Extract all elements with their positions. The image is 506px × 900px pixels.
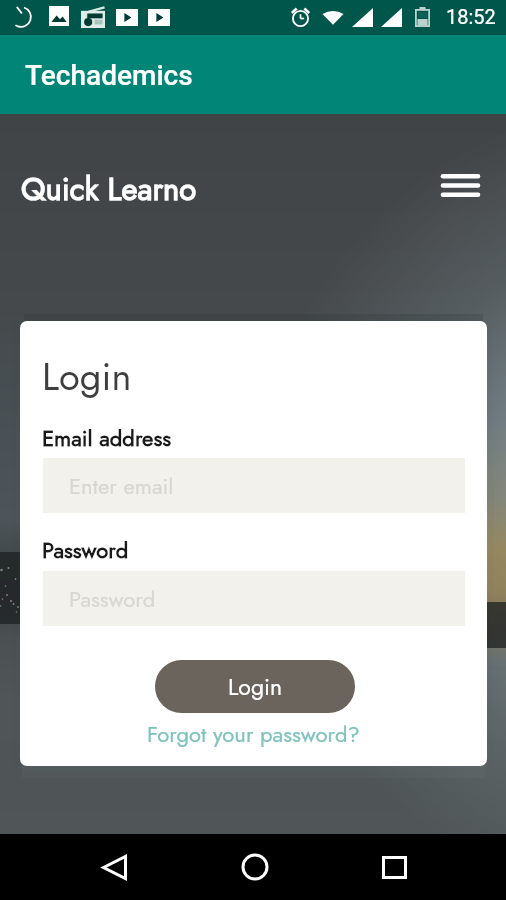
staticText: Login	[228, 670, 283, 703]
staticText: Login	[42, 349, 132, 404]
button[interactable]: Back	[92, 845, 136, 889]
button[interactable]: Enter email	[43, 458, 465, 513]
button[interactable]: Menu	[434, 161, 487, 210]
staticText: Enter email	[69, 470, 174, 502]
staticText: Password	[69, 583, 156, 615]
staticText: Techademics	[25, 59, 193, 92]
button[interactable]: Home	[233, 845, 277, 889]
staticText: Quick Learno	[21, 167, 197, 212]
button[interactable]: Password	[43, 571, 465, 626]
button[interactable]: Forgot your password?	[145, 717, 362, 751]
button[interactable]: Recents	[372, 845, 416, 889]
staticText: 18:52	[446, 5, 496, 28]
staticText: Forgot your password?	[147, 718, 360, 750]
staticText: Password	[42, 534, 129, 566]
button[interactable]: Login	[155, 660, 355, 713]
staticText: Email address	[42, 422, 172, 454]
